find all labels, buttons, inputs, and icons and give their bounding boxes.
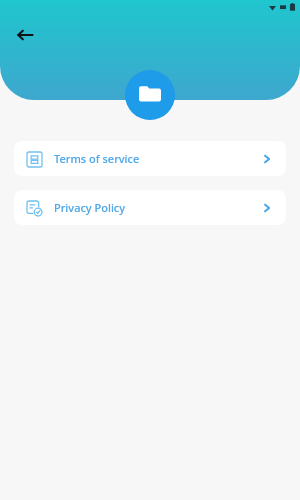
button[interactable]: Privacy Policy — [14, 190, 286, 225]
button[interactable]: Back — [10, 20, 40, 50]
button[interactable]: Folder — [125, 70, 175, 120]
staticText: Terms of service — [54, 151, 140, 166]
staticText: Privacy Policy — [54, 200, 126, 215]
button[interactable]: Terms of service — [14, 141, 286, 176]
